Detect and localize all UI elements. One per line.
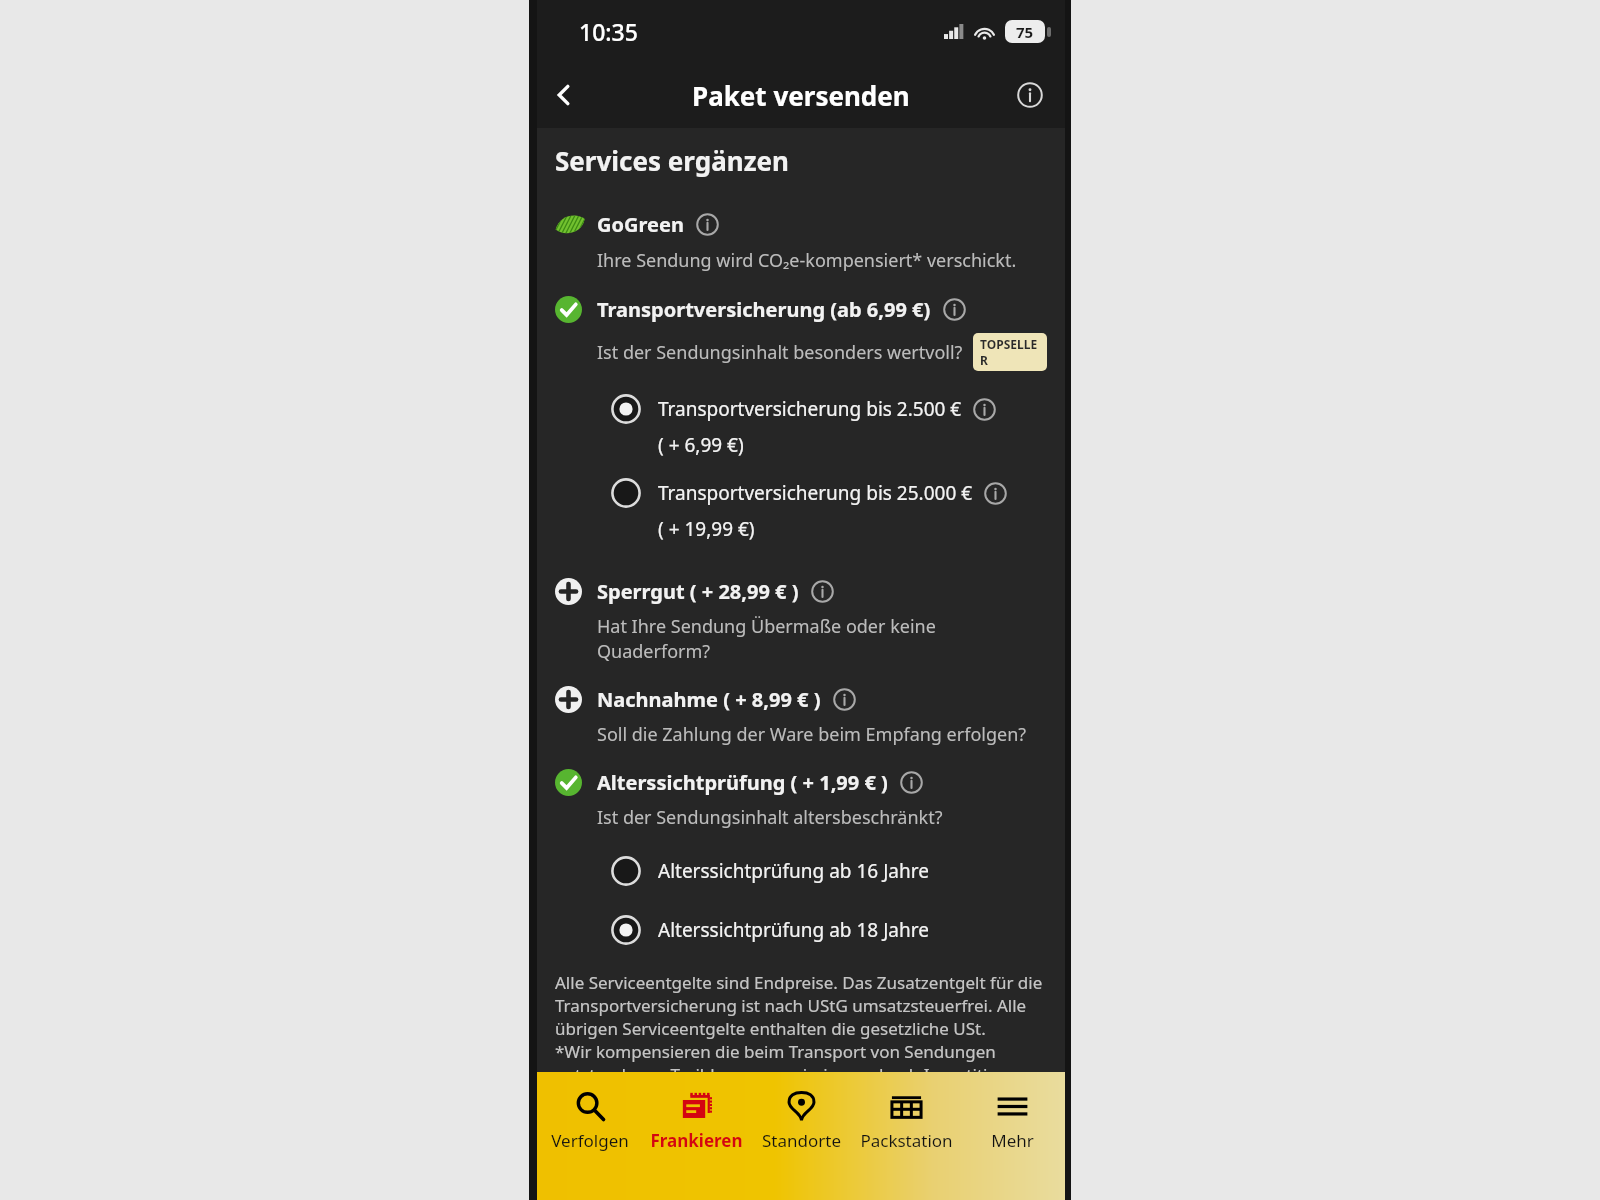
button[interactable]: Verfolgen [538,1084,642,1156]
button[interactable]: Standorte [749,1084,853,1156]
staticText: Alterssichtprüfung ab 18 Jahre [658,917,929,943]
button[interactable]: Frankieren [644,1084,748,1156]
staticText: ( + 19,99 €) [658,516,755,542]
button[interactable]: Info [984,482,1007,505]
button[interactable]: Info Transportversicherung [943,298,966,321]
button[interactable]: Info [833,688,856,711]
button[interactable]: Information [1005,70,1055,120]
button[interactable]: Transportversicherung bis 2.500 € [555,394,1047,458]
button[interactable]: Sperrgut ( + 28,99 € ) [555,578,1047,664]
button[interactable]: Transportversicherung (ab 6,99 €) [555,296,1047,323]
staticText: Alle Serviceentgelte sind Endpreise. Das… [555,971,1047,1072]
staticText: Sperrgut ( + 28,99 € ) [597,578,799,605]
button[interactable]: Mehr [960,1084,1064,1156]
staticText: Hat Ihre Sendung Übermaße oder keine Qua… [597,614,1047,664]
button[interactable]: Alterssichtprüfung ab 16 Jahre [555,856,1047,886]
button[interactable]: Info [811,580,834,603]
staticText: Paket versenden [692,78,910,113]
staticText: Transportversicherung bis 2.500 € [658,396,962,422]
staticText: Mehr [991,1129,1034,1152]
staticText: Alterssichtprüfung ab 16 Jahre [658,858,929,884]
staticText: Standorte [762,1129,841,1152]
staticText: Frankieren [650,1129,743,1152]
staticText: Packstation [860,1129,953,1152]
staticText: Verfolgen [551,1129,629,1152]
button[interactable]: Packstation [854,1084,958,1156]
button[interactable]: Alterssichtprüfung ( + 1,99 € ) [555,769,1047,830]
button[interactable]: Transportversicherung bis 25.000 € [555,478,1047,542]
staticText: ( + 6,99 €) [658,432,744,458]
staticText: Ihre Sendung wird CO₂e-kompensiert* vers… [597,248,1017,273]
staticText: Transportversicherung bis 25.000 € [658,480,973,506]
staticText: Alterssichtprüfung ( + 1,99 € ) [597,769,888,796]
button[interactable]: GoGreen [555,211,1047,238]
staticText: Ist der Sendungsinhalt altersbeschränkt? [597,805,943,830]
staticText: Services ergänzen [555,143,789,178]
staticText: Transportversicherung (ab 6,99 €) [597,296,931,323]
staticText: 75 [1016,22,1034,42]
staticText: 10:35 [579,16,638,47]
button[interactable]: Info [973,398,996,421]
staticText: Soll die Zahlung der Ware beim Empfang e… [597,722,1027,747]
staticText: GoGreen [597,211,684,238]
button[interactable]: Zurück [537,68,591,122]
staticText: Nachnahme ( + 8,99 € ) [597,686,821,713]
staticText: Ist der Sendungsinhalt besonders wertvol… [597,340,963,365]
button[interactable]: Alterssichtprüfung ab 18 Jahre [555,915,1047,945]
button[interactable]: Info GoGreen [696,213,719,236]
button[interactable]: Info [900,771,923,794]
button[interactable]: Nachnahme ( + 8,99 € ) [555,686,1047,747]
staticText: TOPSELLER [980,336,1040,368]
